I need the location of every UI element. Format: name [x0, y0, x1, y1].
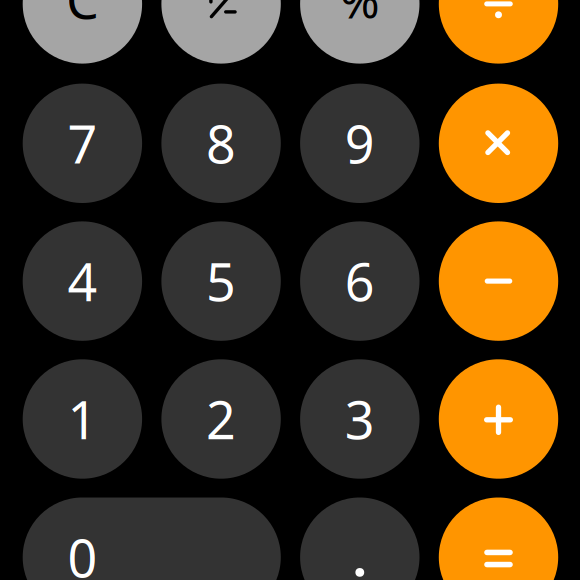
staticText: 7: [67, 109, 97, 178]
button[interactable]: Plus Minus: [161, 0, 281, 64]
button[interactable]: %: [300, 0, 419, 64]
button[interactable]: 3: [300, 359, 419, 479]
staticText: 1: [67, 384, 97, 454]
staticText: 9: [345, 109, 375, 178]
button[interactable]: Add: [439, 359, 558, 479]
button[interactable]: 4: [23, 221, 142, 341]
button[interactable]: 0: [23, 497, 281, 580]
button[interactable]: Multiply: [439, 84, 558, 203]
staticText: %: [340, 0, 380, 32]
button[interactable]: Equals: [439, 497, 558, 580]
button[interactable]: 6: [300, 221, 419, 341]
button[interactable]: 2: [161, 359, 281, 479]
button[interactable]: 8: [161, 84, 281, 203]
button[interactable]: 9: [300, 84, 419, 203]
button[interactable]: C: [23, 0, 142, 64]
button[interactable]: Divide: [439, 0, 558, 64]
staticText: 5: [206, 247, 236, 316]
staticText: 3: [345, 384, 375, 454]
button[interactable]: 5: [161, 221, 281, 341]
staticText: 0: [67, 523, 97, 580]
staticText: 8: [206, 109, 236, 178]
staticText: 6: [345, 247, 375, 316]
button[interactable]: Decimal point: [300, 497, 419, 580]
staticText: 2: [206, 384, 236, 454]
button[interactable]: 1: [23, 359, 142, 479]
button[interactable]: 7: [23, 84, 142, 203]
staticText: C: [66, 0, 99, 33]
button[interactable]: Minus: [439, 221, 558, 341]
staticText: 4: [67, 247, 97, 316]
